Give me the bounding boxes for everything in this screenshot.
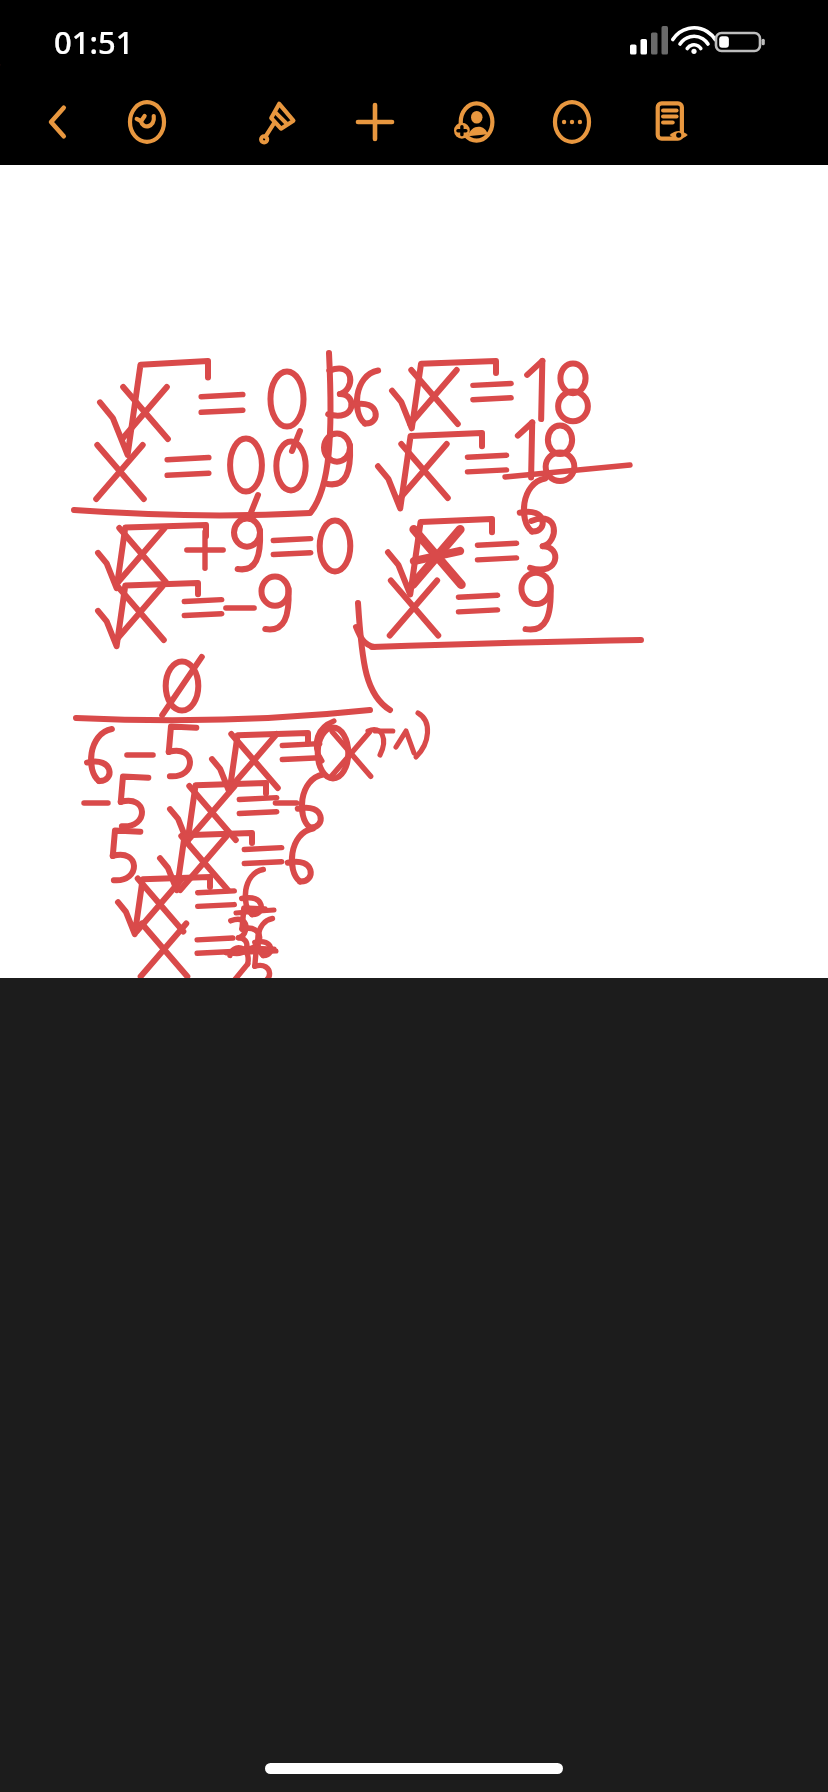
- button[interactable]: [0, 165, 828, 978]
- button[interactable]: Brush: [247, 92, 307, 152]
- button[interactable]: Preview document: [640, 92, 700, 152]
- other: Home indicator: [265, 1763, 563, 1774]
- button[interactable]: Undo: [117, 92, 177, 152]
- button[interactable]: Add: [345, 92, 405, 152]
- staticText: 01:51: [54, 21, 134, 63]
- button[interactable]: Add person: [443, 92, 503, 152]
- button[interactable]: Back: [27, 92, 87, 152]
- button[interactable]: More options: [542, 92, 602, 152]
